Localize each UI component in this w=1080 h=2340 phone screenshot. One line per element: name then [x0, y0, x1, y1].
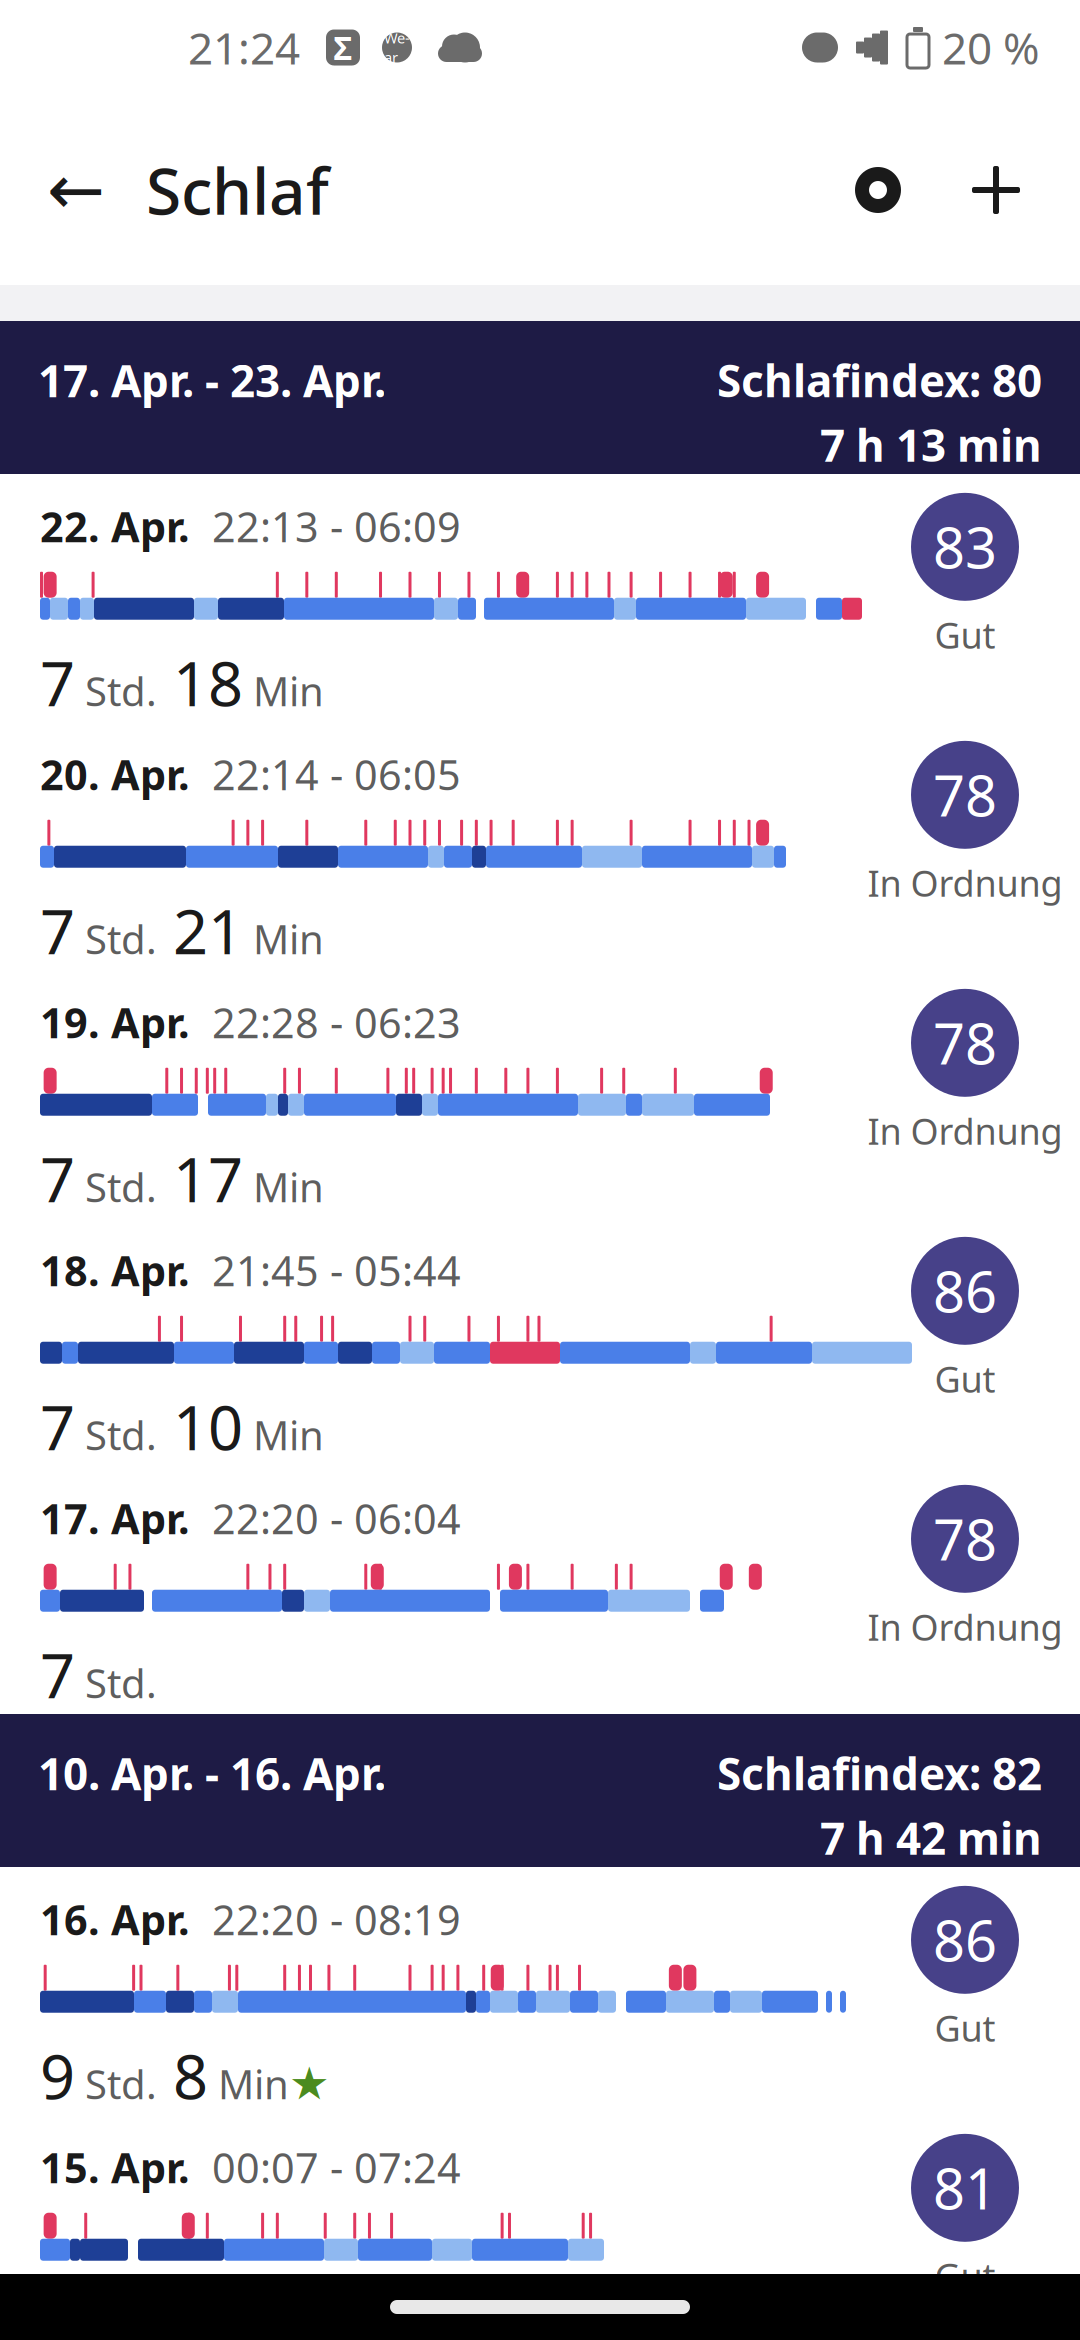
staticText: 78 — [933, 758, 997, 832]
staticText: Gut — [934, 2252, 995, 2300]
staticText: Gut — [934, 611, 995, 659]
button[interactable]: Settings — [832, 144, 924, 236]
staticText: 17. Apr. - 23. Apr. — [38, 351, 386, 409]
staticText: 15. Apr. — [40, 2140, 190, 2195]
staticText: 7 h 42 min — [820, 1808, 1042, 1867]
staticText: 22:13 - 06:09 — [212, 499, 461, 554]
staticText: ★ — [289, 2058, 330, 2109]
staticText: 22:20 - 06:04 — [212, 1491, 461, 1546]
staticText: Gut — [934, 1355, 995, 1403]
staticText: Std. — [75, 1656, 157, 1709]
staticText: 8 — [157, 2035, 208, 2116]
staticText: 22:28 - 06:23 — [212, 995, 461, 1050]
staticText: 18. Apr. — [40, 1243, 190, 1298]
staticText: 7 — [40, 890, 75, 971]
staticText: ← — [47, 151, 105, 229]
staticText: 00:07 - 07:24 — [212, 2140, 461, 2195]
staticText: Std. — [75, 912, 157, 965]
staticText: Min — [243, 664, 324, 717]
staticText: 7 — [40, 1386, 75, 1467]
staticText: 7 — [40, 642, 75, 723]
staticText: 10. Apr. - 16. Apr. — [38, 1744, 386, 1802]
staticText: 22:14 - 06:05 — [212, 747, 461, 802]
staticText: 83 — [933, 510, 997, 584]
staticText: In Ordnung — [867, 1107, 1062, 1155]
staticText: 21:24 — [188, 18, 300, 77]
staticText: 78 — [933, 1502, 997, 1576]
staticText: 16. Apr. — [40, 1892, 190, 1947]
staticText: Σ — [333, 26, 352, 69]
staticText: In Ordnung — [867, 859, 1062, 907]
staticText: Min — [208, 2057, 289, 2110]
button[interactable]: 15. Apr. — [0, 2115, 1080, 2340]
staticText: Std. — [75, 1408, 157, 1461]
staticText: 7 — [40, 1634, 75, 1715]
staticText: Min — [243, 912, 324, 965]
staticText: 18 — [157, 642, 243, 723]
button[interactable]: 20. Apr. — [0, 722, 1080, 970]
button[interactable]: Add — [950, 144, 1042, 236]
staticText: 10 — [157, 1386, 243, 1467]
staticText: 22:20 - 08:19 — [212, 1892, 461, 1947]
button[interactable]: 18. Apr. — [0, 1218, 1080, 1466]
button[interactable]: Back — [28, 142, 124, 238]
staticText: 19. Apr. — [40, 995, 190, 1050]
staticText: 7 — [40, 1138, 75, 1219]
staticText: 78 — [933, 1006, 997, 1080]
staticText: 7 h 13 min — [820, 415, 1042, 474]
staticText: Schlafindex: 80 — [717, 351, 1042, 409]
button[interactable]: 22. Apr. — [0, 474, 1080, 722]
staticText: In Ordnung — [867, 1603, 1062, 1651]
staticText: 17. Apr. — [40, 1491, 190, 1546]
staticText: Schlafindex: 82 — [717, 1744, 1042, 1802]
staticText: 81 — [933, 2151, 997, 2225]
staticText: Min — [243, 1408, 324, 1461]
button[interactable]: 16. Apr. — [0, 1867, 1080, 2115]
staticText: Std. — [75, 664, 157, 717]
staticText: Std. — [75, 2057, 157, 2110]
staticText: 21 — [157, 890, 243, 971]
staticText: 22. Apr. — [40, 499, 190, 554]
staticText: 9 — [40, 2035, 75, 2116]
staticText: 86 — [933, 1254, 997, 1328]
staticText: Std. — [75, 1160, 157, 1213]
staticText: Gut — [934, 2004, 995, 2052]
staticText: 17 — [157, 1138, 243, 1219]
staticText: Min — [243, 1160, 324, 1213]
staticText: Wear — [384, 28, 410, 67]
button[interactable]: 17. Apr. — [0, 1466, 1080, 1714]
staticText: 86 — [933, 1903, 997, 1977]
button[interactable]: 19. Apr. — [0, 970, 1080, 1218]
staticText: 20. Apr. — [40, 747, 190, 802]
staticText: Schlaf — [146, 147, 329, 232]
staticText: 21:45 - 05:44 — [212, 1243, 461, 1298]
staticText: 20 % — [942, 18, 1040, 77]
